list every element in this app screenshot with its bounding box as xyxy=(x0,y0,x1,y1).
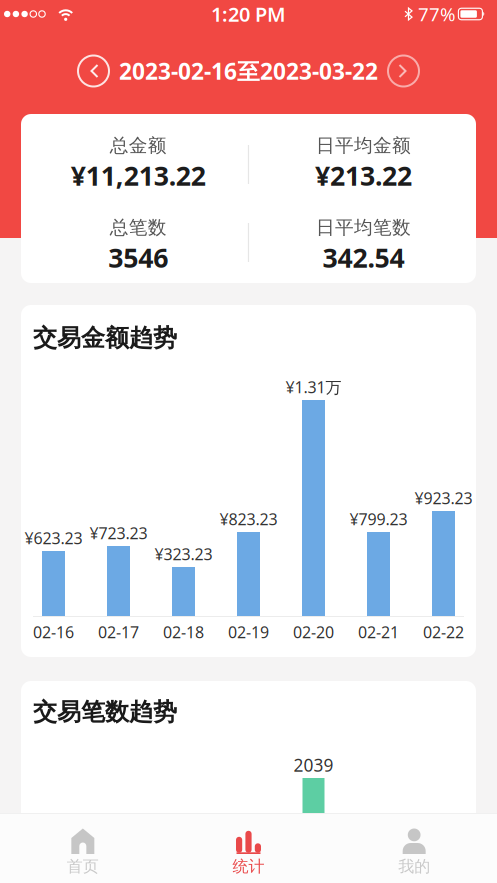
staticText: 77% xyxy=(418,2,456,26)
staticText: 02-20 xyxy=(293,621,334,643)
button[interactable]: 我的 xyxy=(331,813,497,883)
button[interactable]: Previous date range xyxy=(72,49,115,92)
staticText: ¥323.23 xyxy=(154,543,212,565)
staticText: 2023-02-16至2023-03-22 xyxy=(119,56,378,86)
staticText: ¥823.23 xyxy=(219,508,277,530)
staticText: 02-17 xyxy=(98,621,139,643)
staticText: 我的 xyxy=(398,857,430,876)
staticText: 342.54 xyxy=(322,240,404,275)
staticText: 统计 xyxy=(232,857,264,876)
staticText: 1:20 PM xyxy=(211,1,286,27)
staticText: 02-22 xyxy=(423,621,464,643)
staticText: ¥1.31万 xyxy=(285,376,341,398)
staticText: ¥923.23 xyxy=(414,487,472,509)
staticText: 首页 xyxy=(67,857,99,876)
staticText: 2039 xyxy=(293,753,333,776)
staticText: 02-19 xyxy=(228,621,269,643)
staticText: 交易笔数趋势 xyxy=(33,697,177,727)
button[interactable]: Next date range xyxy=(382,49,425,92)
staticText: ¥11,213.22 xyxy=(71,158,206,193)
staticText: ¥799.23 xyxy=(349,508,407,530)
staticText: 交易金额趋势 xyxy=(33,323,177,353)
staticText: 日平均笔数 xyxy=(316,216,411,239)
staticText: ¥723.23 xyxy=(89,522,147,544)
button[interactable]: 统计 xyxy=(166,813,331,883)
staticText: ¥213.22 xyxy=(315,158,412,193)
staticText: 总笔数 xyxy=(110,216,167,239)
staticText: 02-18 xyxy=(163,621,204,643)
staticText: 02-21 xyxy=(358,621,399,643)
button[interactable]: 首页 xyxy=(0,813,166,883)
staticText: ¥623.23 xyxy=(24,527,82,549)
staticText: 总金额 xyxy=(110,134,167,157)
staticText: 02-16 xyxy=(33,621,74,643)
staticText: 3546 xyxy=(108,240,168,275)
staticText: 日平均金额 xyxy=(316,134,411,157)
